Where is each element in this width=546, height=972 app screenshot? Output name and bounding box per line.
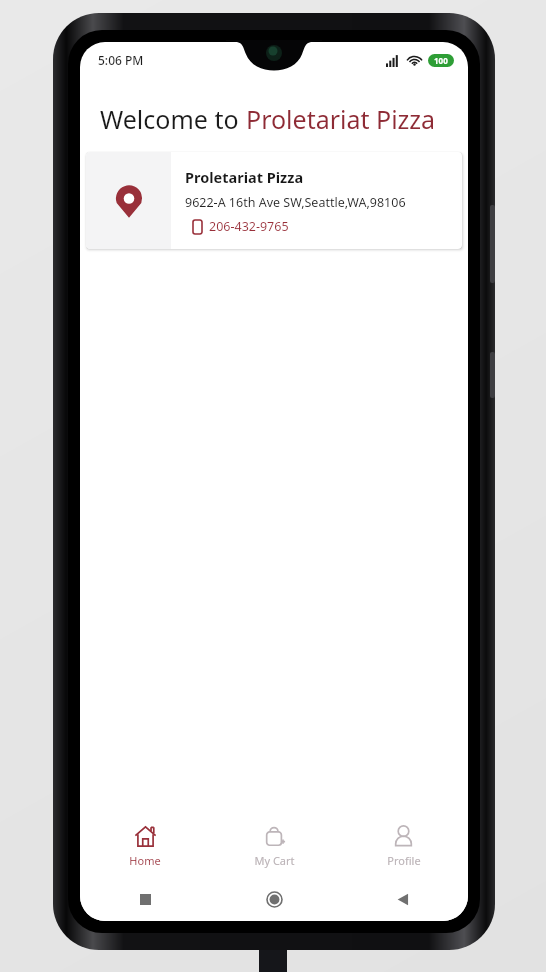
staticText: My Cart [254,853,295,868]
staticText: 9622-A 16th Ave SW,Seattle,WA,98106 [185,194,406,211]
button[interactable]: Home [210,877,339,921]
button[interactable]: Profile [339,815,468,877]
button[interactable]: 206-432-9765 [193,218,289,235]
staticText: Proletariat Pizza [185,167,304,187]
button[interactable]: Home [80,815,210,877]
staticText: 5:06 PM [98,52,144,68]
button[interactable]: Recent apps [80,877,210,921]
button[interactable]: Back [339,877,468,921]
staticText: Home [129,853,161,868]
staticText: 206-432-9765 [209,218,289,235]
staticText: 100 [434,55,448,66]
staticText: Welcome to [100,102,246,136]
staticText: Profile [387,853,421,868]
button[interactable]: Proletariat Pizza [86,152,462,249]
button[interactable]: My Cart [210,815,339,877]
staticText: Proletariat Pizza [246,102,436,136]
